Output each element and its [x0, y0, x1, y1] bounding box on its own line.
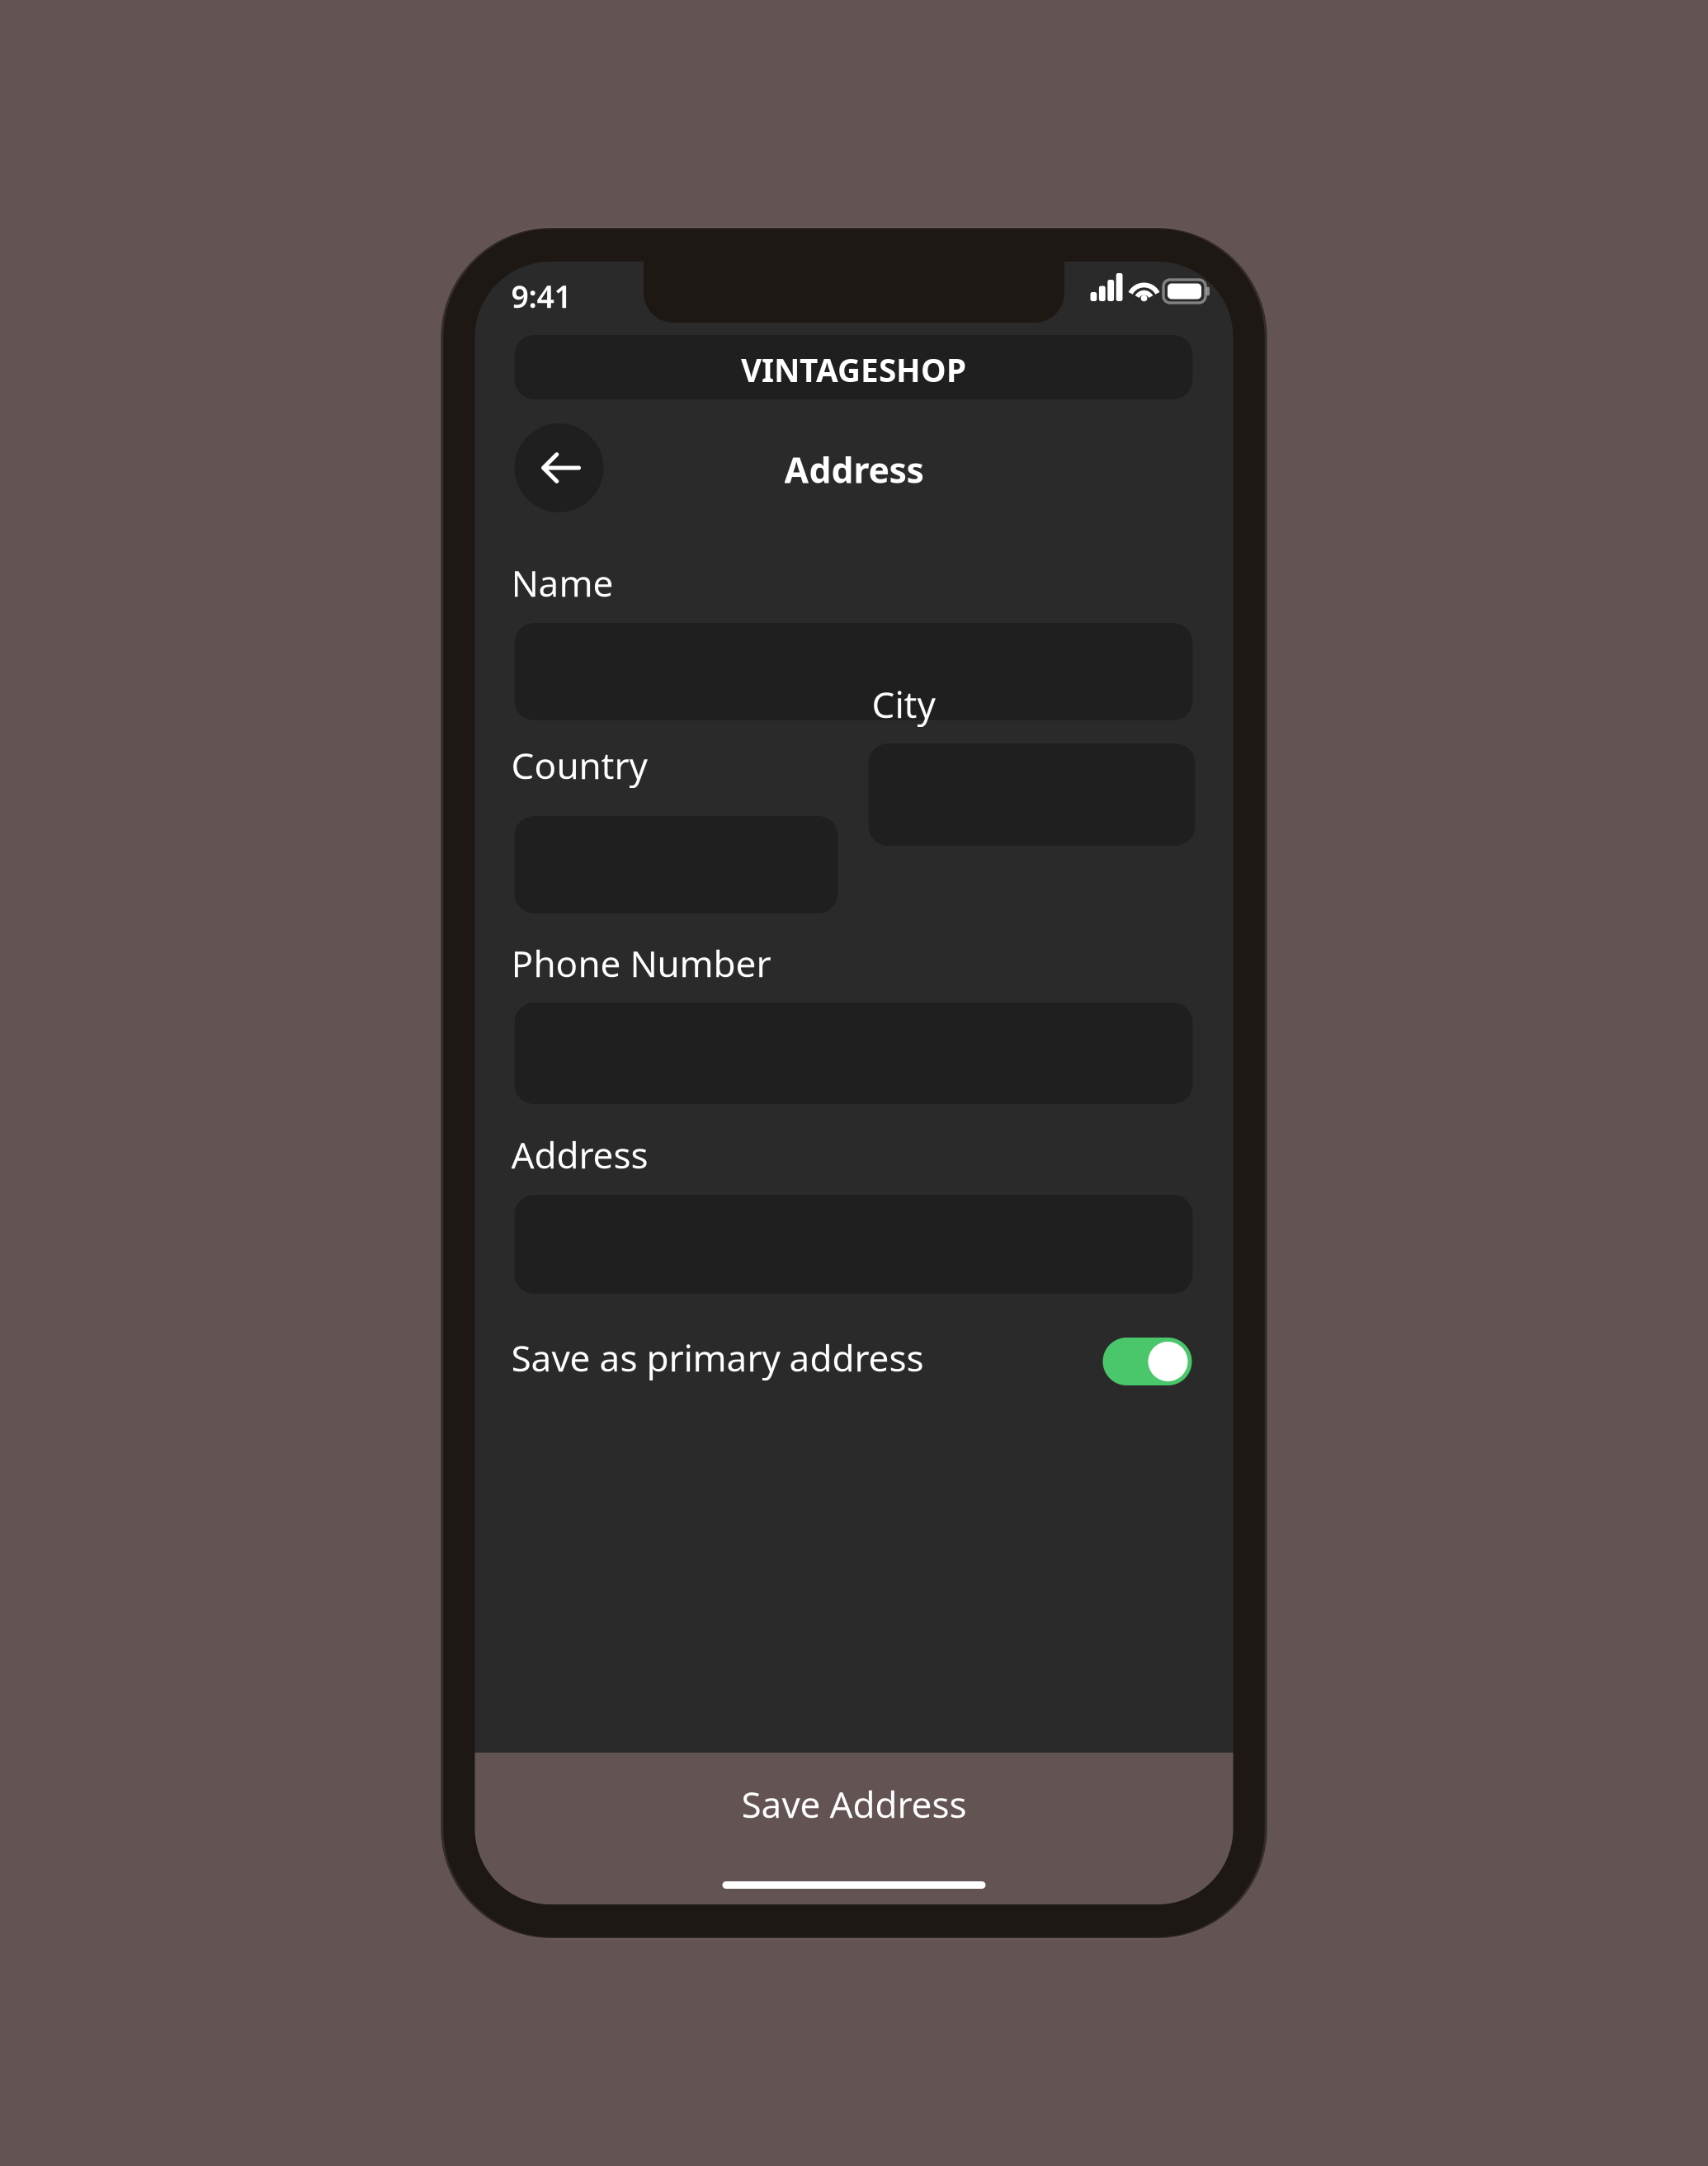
staticText: 9:41 [511, 276, 571, 317]
button[interactable]: Save Address [475, 1753, 1233, 1904]
staticText: VINTAGESHOP [741, 348, 966, 391]
staticText: Save as primary address [511, 1333, 924, 1382]
staticText: Phone Number [511, 939, 771, 987]
button[interactable]: Back [514, 423, 604, 512]
staticText: City [872, 680, 935, 728]
staticText: Address [784, 446, 924, 493]
staticText: Name [511, 559, 613, 607]
button[interactable]: Name [514, 623, 1193, 720]
staticText: Save Address [741, 1780, 967, 1828]
staticText: Country [511, 741, 647, 789]
staticText: Address [511, 1130, 648, 1179]
button[interactable]: Save as primary address [1103, 1338, 1192, 1385]
